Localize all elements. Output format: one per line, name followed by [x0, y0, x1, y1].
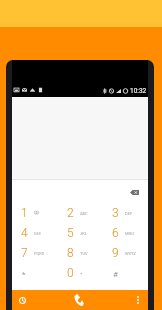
staticText: TUV [80, 251, 88, 256]
button[interactable]: 5 [58, 225, 103, 245]
staticText: MNO [125, 231, 135, 236]
staticText: 4 [21, 226, 28, 240]
button[interactable]: 0 [58, 265, 103, 285]
button[interactable]: Call history [15, 290, 29, 310]
staticText: 3 [112, 206, 119, 220]
staticText: 7 [21, 246, 28, 260]
button[interactable]: 4 [12, 225, 58, 245]
staticText: 6 [112, 226, 119, 240]
staticText: PQRS [34, 251, 45, 256]
staticText: ABC [80, 211, 88, 216]
staticText: 5 [67, 226, 74, 240]
staticText: 8 [67, 246, 74, 260]
staticText: WXYZ [125, 251, 136, 256]
button[interactable]: 3 [103, 205, 148, 225]
staticText: 1 [21, 206, 28, 220]
staticText: 2 [67, 206, 74, 220]
button[interactable]: 1 [12, 205, 58, 225]
staticText: * [22, 270, 26, 279]
staticText: GHI [34, 231, 41, 236]
button[interactable]: Backspace [125, 185, 143, 199]
staticText: 10:32 [130, 87, 147, 95]
button[interactable]: # [103, 265, 148, 285]
button[interactable]: 6 [103, 225, 148, 245]
button[interactable]: 8 [58, 245, 103, 265]
staticText: 0 [67, 266, 74, 280]
button[interactable]: * [12, 265, 58, 285]
button[interactable]: 7 [12, 245, 58, 265]
button[interactable]: 9 [103, 245, 148, 265]
button[interactable]: 2 [58, 205, 103, 225]
staticText: 9 [112, 246, 119, 260]
button[interactable]: More options [132, 290, 144, 310]
staticText: # [113, 270, 118, 279]
staticText: + [80, 271, 83, 276]
button[interactable]: Dialpad [68, 290, 90, 310]
staticText: DEF [125, 211, 133, 216]
staticText: JKL [80, 231, 87, 236]
